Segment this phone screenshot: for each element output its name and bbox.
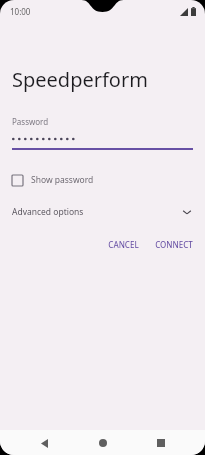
staticText: CONNECT xyxy=(155,239,193,250)
button[interactable]: Show password xyxy=(0,172,205,188)
staticText: Show password xyxy=(31,174,94,186)
staticText: 10:00 xyxy=(10,6,31,17)
button[interactable]: Advanced options xyxy=(0,202,205,222)
button[interactable]: Home xyxy=(93,433,113,453)
staticText: CANCEL xyxy=(108,239,139,250)
staticText: Speedperform xyxy=(12,66,148,93)
other: Expand advanced options xyxy=(181,206,193,218)
button[interactable]: CONNECT xyxy=(149,234,199,255)
staticText: Password xyxy=(12,116,49,127)
button[interactable]: Back xyxy=(34,433,54,453)
button[interactable]: CANCEL xyxy=(102,234,145,255)
button[interactable]: Password xyxy=(0,116,205,150)
staticText: Advanced options xyxy=(12,206,84,218)
button[interactable]: Recent apps xyxy=(151,433,171,453)
